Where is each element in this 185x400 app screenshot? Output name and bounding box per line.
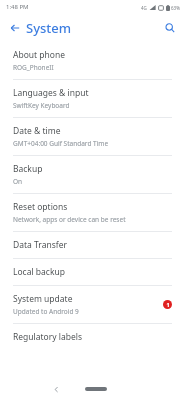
button[interactable]: Search (161, 19, 179, 37)
staticText: Network, apps or device can be reset (13, 215, 126, 224)
button[interactable]: System update (0, 286, 185, 323)
button[interactable]: Languages & input (0, 80, 185, 117)
staticText: GMT+04:00 Gulf Standard Time (13, 139, 109, 148)
button[interactable]: Home (85, 387, 107, 391)
staticText: System (26, 19, 72, 37)
staticText: System update (13, 293, 73, 305)
staticText: Local backup (13, 266, 65, 278)
staticText: About phone (13, 49, 66, 61)
staticText: Data Transfer (13, 239, 67, 251)
button[interactable]: Local backup (0, 259, 185, 285)
staticText: Updated to Android 9 (13, 307, 79, 316)
staticText: Reset options (13, 201, 68, 213)
button[interactable]: Back (6, 19, 24, 37)
staticText: Languages & input (13, 87, 89, 99)
staticText: Backup (13, 163, 43, 175)
button[interactable]: Date & time (0, 118, 185, 155)
staticText: SwiftKey Keyboard (13, 101, 70, 110)
button[interactable]: Backup (0, 156, 185, 193)
staticText: 1 (166, 301, 170, 308)
staticText: 4G (141, 5, 147, 11)
staticText: Date & time (13, 125, 61, 137)
button[interactable]: Back (48, 381, 64, 397)
staticText: On (13, 177, 23, 186)
staticText: 63% (171, 5, 180, 11)
staticText: Regulatory labels (13, 331, 83, 343)
staticText: ROG_PhoneII (13, 63, 54, 72)
button[interactable]: Data Transfer (0, 232, 185, 258)
button[interactable]: Reset options (0, 194, 185, 231)
button[interactable]: About phone (0, 42, 185, 79)
staticText: 1:48 PM (6, 3, 29, 11)
button[interactable]: Regulatory labels (0, 324, 185, 350)
